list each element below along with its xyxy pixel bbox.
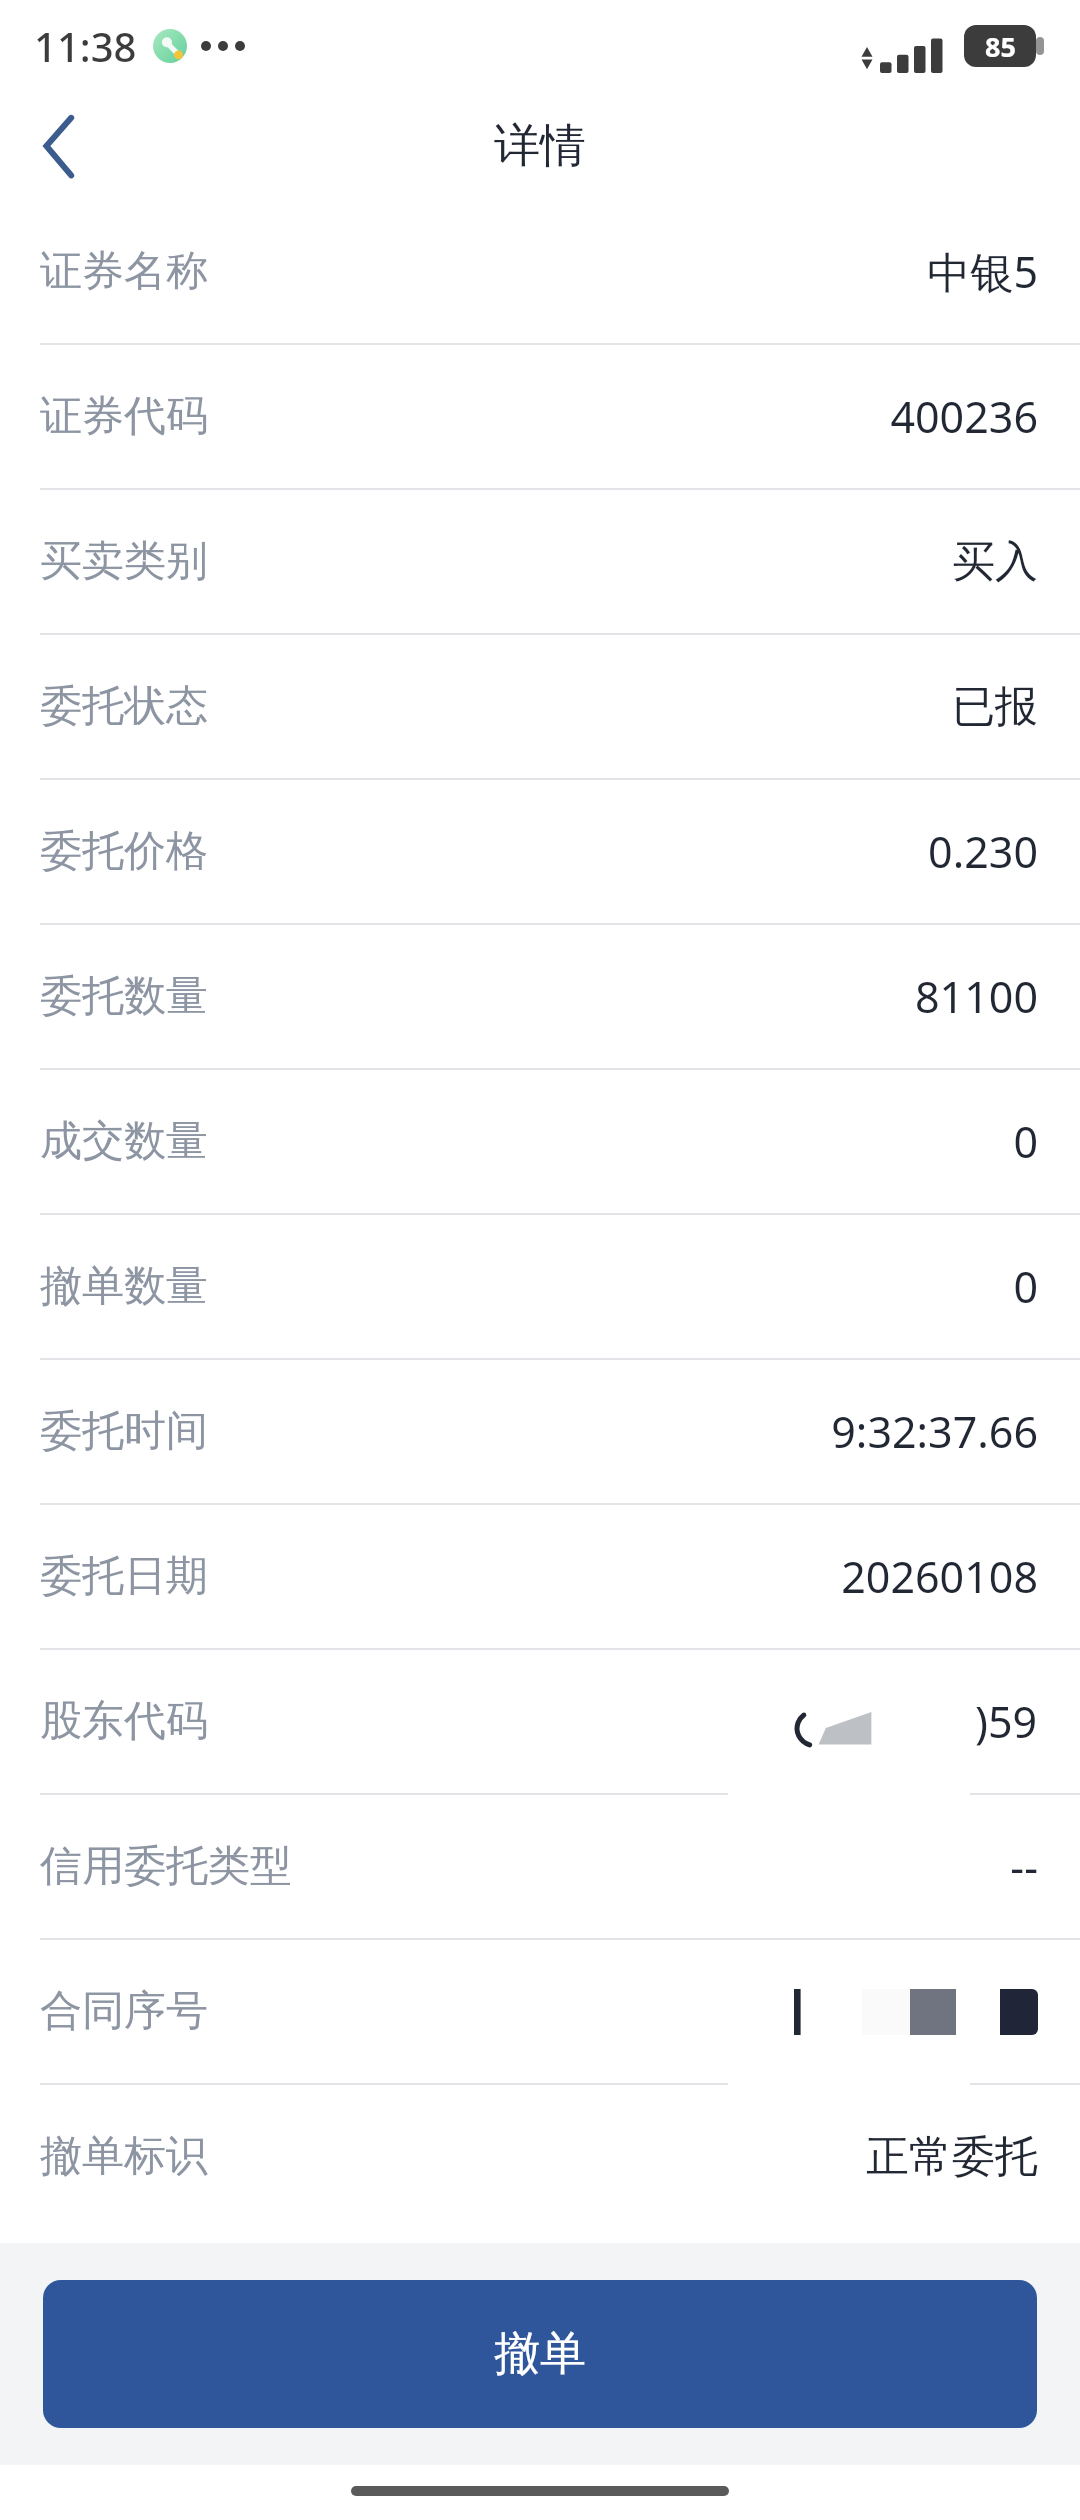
button[interactable]: 买卖类别	[0, 490, 1080, 635]
button[interactable]: 委托状态	[0, 635, 1080, 780]
staticText: 11:38	[34, 19, 137, 73]
staticText: 81100	[915, 967, 1038, 1026]
staticText: 400236	[890, 387, 1038, 446]
staticText: 9:32:37.66	[831, 1402, 1038, 1461]
staticText: 撤单数量	[40, 1260, 208, 1313]
staticText: 信用委托类型	[40, 1840, 292, 1893]
staticText: 成交数量	[40, 1115, 208, 1168]
staticText: 买卖类别	[40, 535, 208, 588]
button[interactable]: 成交数量	[0, 1070, 1080, 1215]
staticText: 撤单	[494, 2325, 586, 2383]
staticText: 委托状态	[40, 680, 208, 733]
staticText: )59	[975, 1692, 1038, 1751]
button[interactable]: 撤单标识	[0, 2085, 1080, 2230]
staticText: 已报	[952, 680, 1038, 734]
staticText: 撤单标识	[40, 2130, 208, 2183]
staticText: 中银5	[927, 242, 1038, 301]
staticText: 0	[1013, 1112, 1038, 1171]
button[interactable]: 委托数量	[0, 925, 1080, 1070]
staticText: 委托日期	[40, 1550, 208, 1603]
staticText: 详情	[494, 117, 586, 175]
staticText: 委托时间	[40, 1405, 208, 1458]
button[interactable]: 股东代码	[0, 1650, 1080, 1795]
button[interactable]: 证券代码	[0, 345, 1080, 490]
staticText: 正常委托	[866, 2130, 1038, 2184]
staticText: 合同序号	[40, 1985, 208, 2038]
button[interactable]: 信用委托类型	[0, 1795, 1080, 1940]
button[interactable]: 委托价格	[0, 780, 1080, 925]
button[interactable]: 返回	[0, 92, 120, 200]
staticText: 85	[985, 28, 1016, 65]
staticText: 股东代码	[40, 1695, 208, 1748]
staticText: 证券代码	[40, 390, 208, 443]
staticText: 委托价格	[40, 825, 208, 878]
button[interactable]: 撤单数量	[0, 1215, 1080, 1360]
staticText: 0.230	[928, 822, 1038, 881]
button[interactable]: 证券名称	[0, 200, 1080, 345]
staticText: 0	[1013, 1257, 1038, 1316]
button[interactable]: 撤单	[43, 2280, 1037, 2428]
button[interactable]: 委托时间	[0, 1360, 1080, 1505]
staticText: 委托数量	[40, 970, 208, 1023]
staticText: 买入	[952, 535, 1038, 589]
staticText: --	[1010, 1837, 1038, 1896]
button[interactable]: 合同序号	[0, 1940, 1080, 2085]
button[interactable]: 委托日期	[0, 1505, 1080, 1650]
staticText: 20260108	[841, 1547, 1038, 1606]
staticText: 证券名称	[40, 245, 208, 298]
